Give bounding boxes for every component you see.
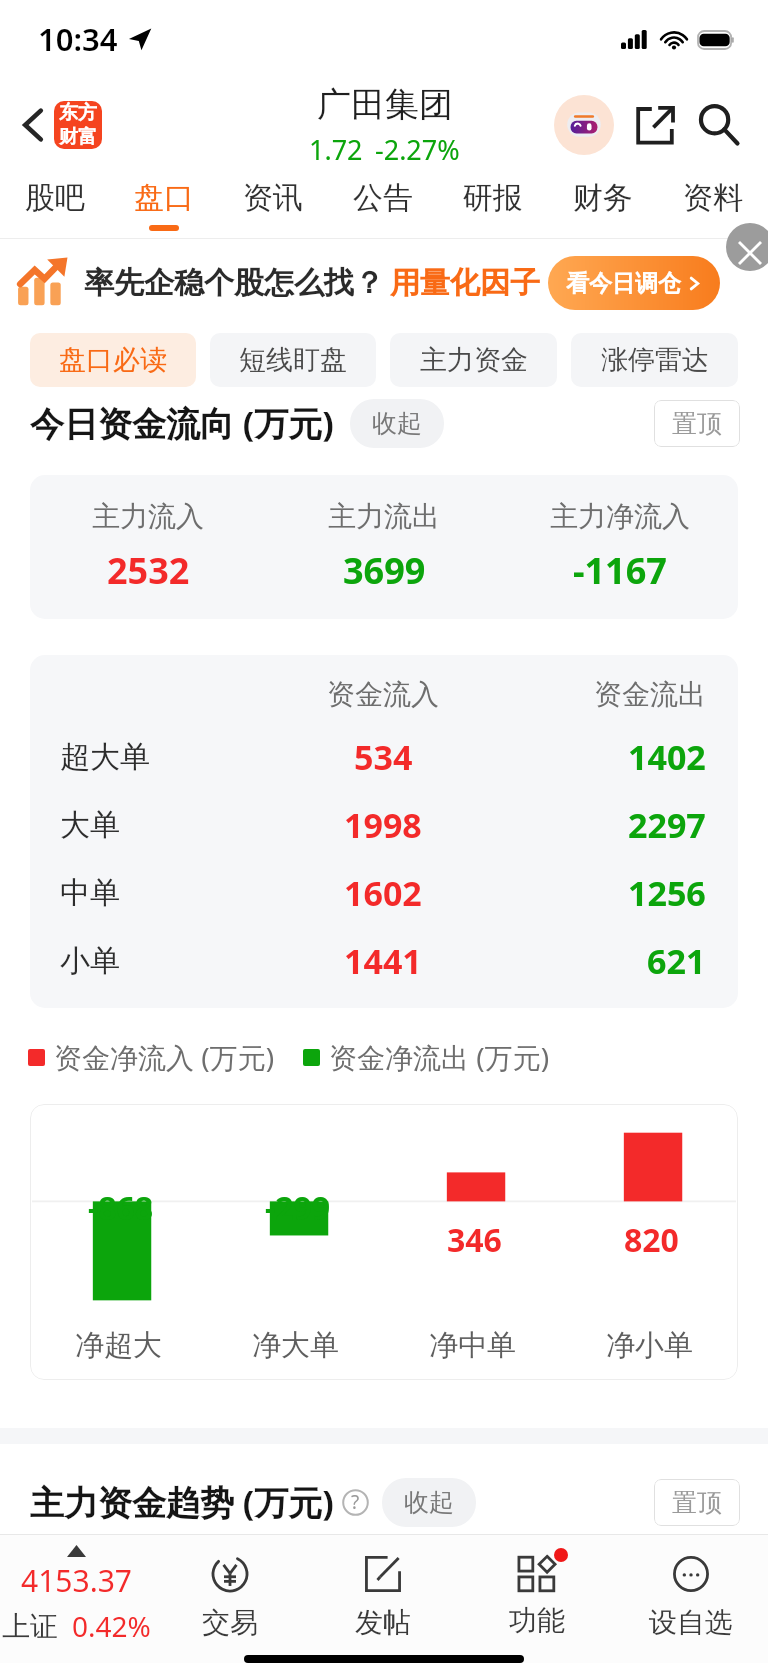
staticText: 346 bbox=[447, 1218, 502, 1262]
button[interactable]: AI 助手 bbox=[554, 95, 614, 155]
staticText: 1441 bbox=[344, 938, 422, 984]
staticText: 公告 bbox=[353, 179, 413, 217]
staticText: 2297 bbox=[628, 802, 706, 848]
button[interactable]: 交易 bbox=[153, 1535, 306, 1655]
button[interactable]: 资料 bbox=[658, 172, 768, 238]
staticText: 资金净流出 (万元) bbox=[329, 1038, 550, 1076]
staticText: 资讯 bbox=[243, 179, 303, 217]
button[interactable]: 发帖 bbox=[306, 1535, 460, 1655]
staticText: 主力流入 bbox=[92, 499, 204, 534]
staticText: 东方 bbox=[59, 101, 97, 125]
staticText: 主力流出 bbox=[328, 499, 440, 534]
staticText: 534 bbox=[354, 734, 413, 780]
staticText: 广田集团 bbox=[317, 83, 453, 126]
staticText: 看今日调仓 bbox=[566, 269, 681, 298]
staticText: 资金流出 bbox=[594, 677, 706, 712]
staticText: 1998 bbox=[344, 802, 422, 848]
staticText: 交易 bbox=[202, 1605, 258, 1640]
staticText: 1602 bbox=[344, 870, 422, 916]
staticText: 资金净流入 (万元) bbox=[54, 1038, 275, 1076]
button[interactable]: 关闭 bbox=[726, 223, 768, 271]
staticText: 4153.37 bbox=[21, 1560, 132, 1601]
button[interactable]: 研报 bbox=[438, 172, 548, 238]
button[interactable]: 盘口 bbox=[109, 172, 218, 238]
staticText: 0.42% bbox=[72, 1607, 151, 1645]
staticText: 主力资金趋势 (万元) bbox=[30, 1479, 334, 1525]
other: 返回 bbox=[20, 105, 46, 145]
staticText: 小单 bbox=[60, 942, 120, 980]
button[interactable]: 短线盯盘 bbox=[210, 333, 376, 387]
staticText: 净超大 bbox=[75, 1327, 162, 1364]
button[interactable]: 盘口必读 bbox=[30, 333, 196, 387]
staticText: 股吧 bbox=[25, 179, 85, 217]
button[interactable]: 资讯 bbox=[218, 172, 328, 238]
staticText: 置顶 bbox=[672, 408, 722, 439]
staticText: -1167 bbox=[573, 546, 667, 595]
staticText: 大单 bbox=[60, 806, 120, 844]
staticText: 820 bbox=[624, 1218, 679, 1262]
staticText: 上证 bbox=[2, 1609, 58, 1644]
staticText: 收起 bbox=[404, 1487, 454, 1518]
button[interactable]: 搜索 bbox=[688, 94, 750, 156]
staticText: -868 bbox=[88, 1186, 154, 1230]
staticText: 净大单 bbox=[252, 1327, 339, 1364]
staticText: 主力净流入 bbox=[550, 499, 690, 534]
staticText: 率先企稳个股怎么找？ bbox=[84, 264, 384, 302]
staticText: 主力资金 bbox=[420, 343, 528, 377]
staticText: 621 bbox=[647, 938, 706, 984]
button[interactable]: 收起 bbox=[382, 1478, 476, 1527]
button[interactable]: 看今日调仓 bbox=[548, 256, 720, 310]
button[interactable]: 设自选 bbox=[614, 1535, 768, 1655]
staticText: 置顶 bbox=[672, 1487, 722, 1518]
staticText: 净小单 bbox=[606, 1327, 693, 1364]
staticText: 资金流入 bbox=[327, 677, 439, 712]
staticText: 收起 bbox=[372, 408, 422, 439]
button[interactable]: 主力流入 bbox=[30, 475, 738, 619]
staticText: 功能 bbox=[509, 1603, 565, 1638]
button[interactable]: 功能 bbox=[460, 1535, 614, 1655]
staticText: 2532 bbox=[107, 546, 190, 595]
staticText: 短线盯盘 bbox=[239, 343, 347, 377]
button[interactable]: 财务 bbox=[548, 172, 658, 238]
staticText: 盘口必读 bbox=[59, 343, 167, 377]
button[interactable]: 4153.37 bbox=[0, 1535, 153, 1655]
staticText: 1256 bbox=[628, 870, 706, 916]
staticText: 涨停雷达 bbox=[601, 343, 709, 377]
staticText: 中单 bbox=[60, 874, 120, 912]
staticText: ? bbox=[351, 1489, 360, 1515]
staticText: -2.27% bbox=[375, 131, 460, 168]
button[interactable]: 率先企稳个股怎么找？ bbox=[0, 239, 768, 327]
staticText: 今日资金流向 (万元) bbox=[30, 400, 334, 446]
button[interactable]: 涨停雷达 bbox=[571, 333, 738, 387]
staticText: 设自选 bbox=[649, 1605, 733, 1640]
staticText: 财务 bbox=[573, 179, 633, 217]
staticText: 1.72 bbox=[309, 131, 363, 168]
staticText: 盘口 bbox=[134, 179, 194, 217]
staticText: 净中单 bbox=[429, 1327, 516, 1364]
staticText: 10:34 bbox=[38, 18, 118, 60]
button[interactable]: 主力资金 bbox=[390, 333, 557, 387]
button[interactable]: 分享 bbox=[624, 94, 686, 156]
staticText: 超大单 bbox=[60, 738, 150, 776]
staticText: 财富 bbox=[59, 125, 97, 149]
staticText: 研报 bbox=[463, 179, 523, 217]
button[interactable]: 资金流入 bbox=[30, 655, 738, 1008]
button[interactable]: 置顶 bbox=[654, 400, 740, 447]
button[interactable]: 返回 bbox=[0, 91, 110, 159]
button[interactable]: 公告 bbox=[328, 172, 438, 238]
button[interactable]: 收起 bbox=[350, 399, 444, 448]
staticText: -299 bbox=[265, 1186, 331, 1230]
staticText: 资料 bbox=[683, 179, 743, 217]
staticText: 1402 bbox=[628, 734, 706, 780]
button[interactable]: 说明 bbox=[340, 1487, 370, 1517]
staticText: 用量化因子 bbox=[390, 264, 540, 302]
staticText: 3699 bbox=[343, 546, 426, 595]
button[interactable]: -868 bbox=[30, 1104, 738, 1380]
staticText: 发帖 bbox=[355, 1605, 411, 1640]
button[interactable]: 股吧 bbox=[0, 172, 109, 238]
button[interactable]: 置顶 bbox=[654, 1479, 740, 1526]
